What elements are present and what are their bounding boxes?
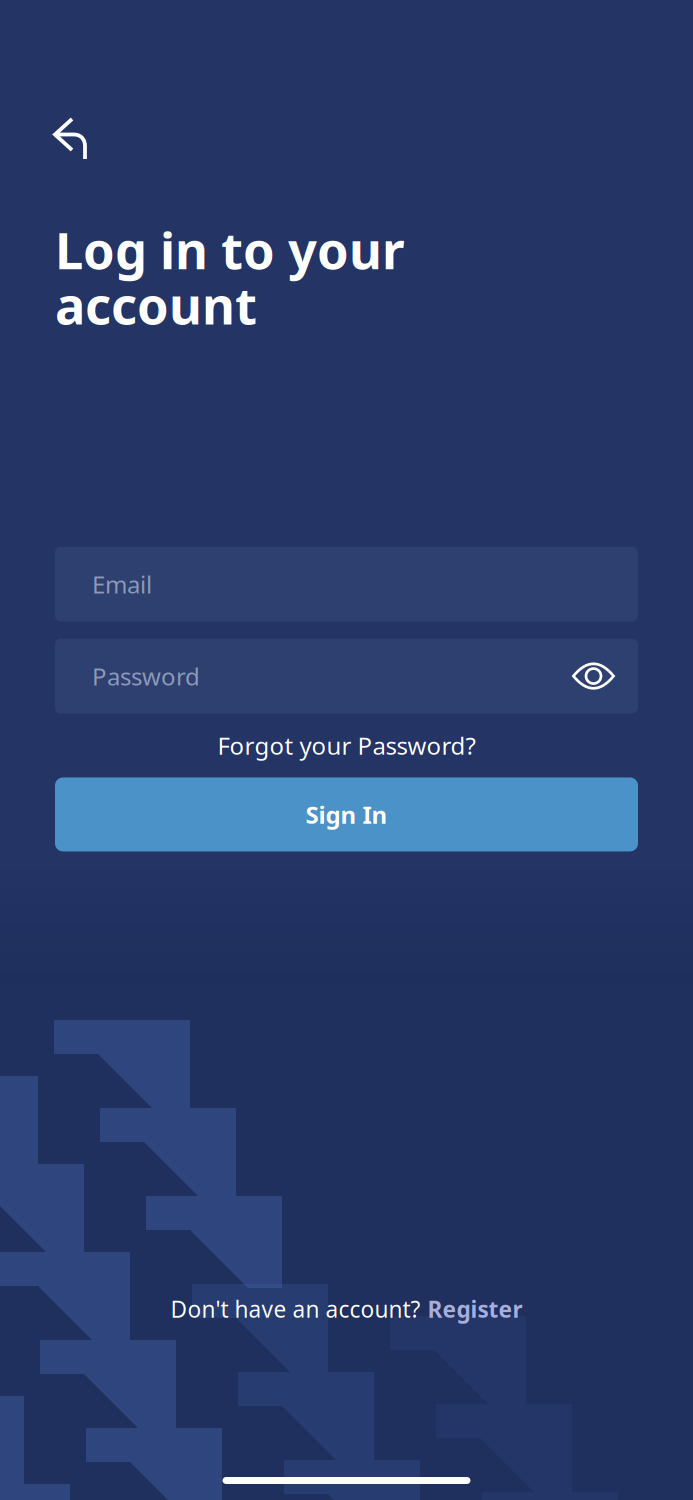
staticText: Password [92,660,200,692]
button[interactable]: Forgot your Password? [0,723,693,768]
button[interactable]: Register [427,1294,522,1324]
staticText: Register [427,1294,522,1324]
button[interactable]: Back [0,0,99,173]
staticText: Email [92,568,152,600]
button[interactable]: Show password [565,648,622,705]
staticText: Forgot your Password? [217,730,475,761]
staticText: Don't have an account? [170,1294,420,1324]
staticText: Sign In [305,798,387,830]
staticText: Log in to your [55,216,405,283]
staticText: account [55,271,257,339]
button[interactable]: Sign In [0,777,693,851]
